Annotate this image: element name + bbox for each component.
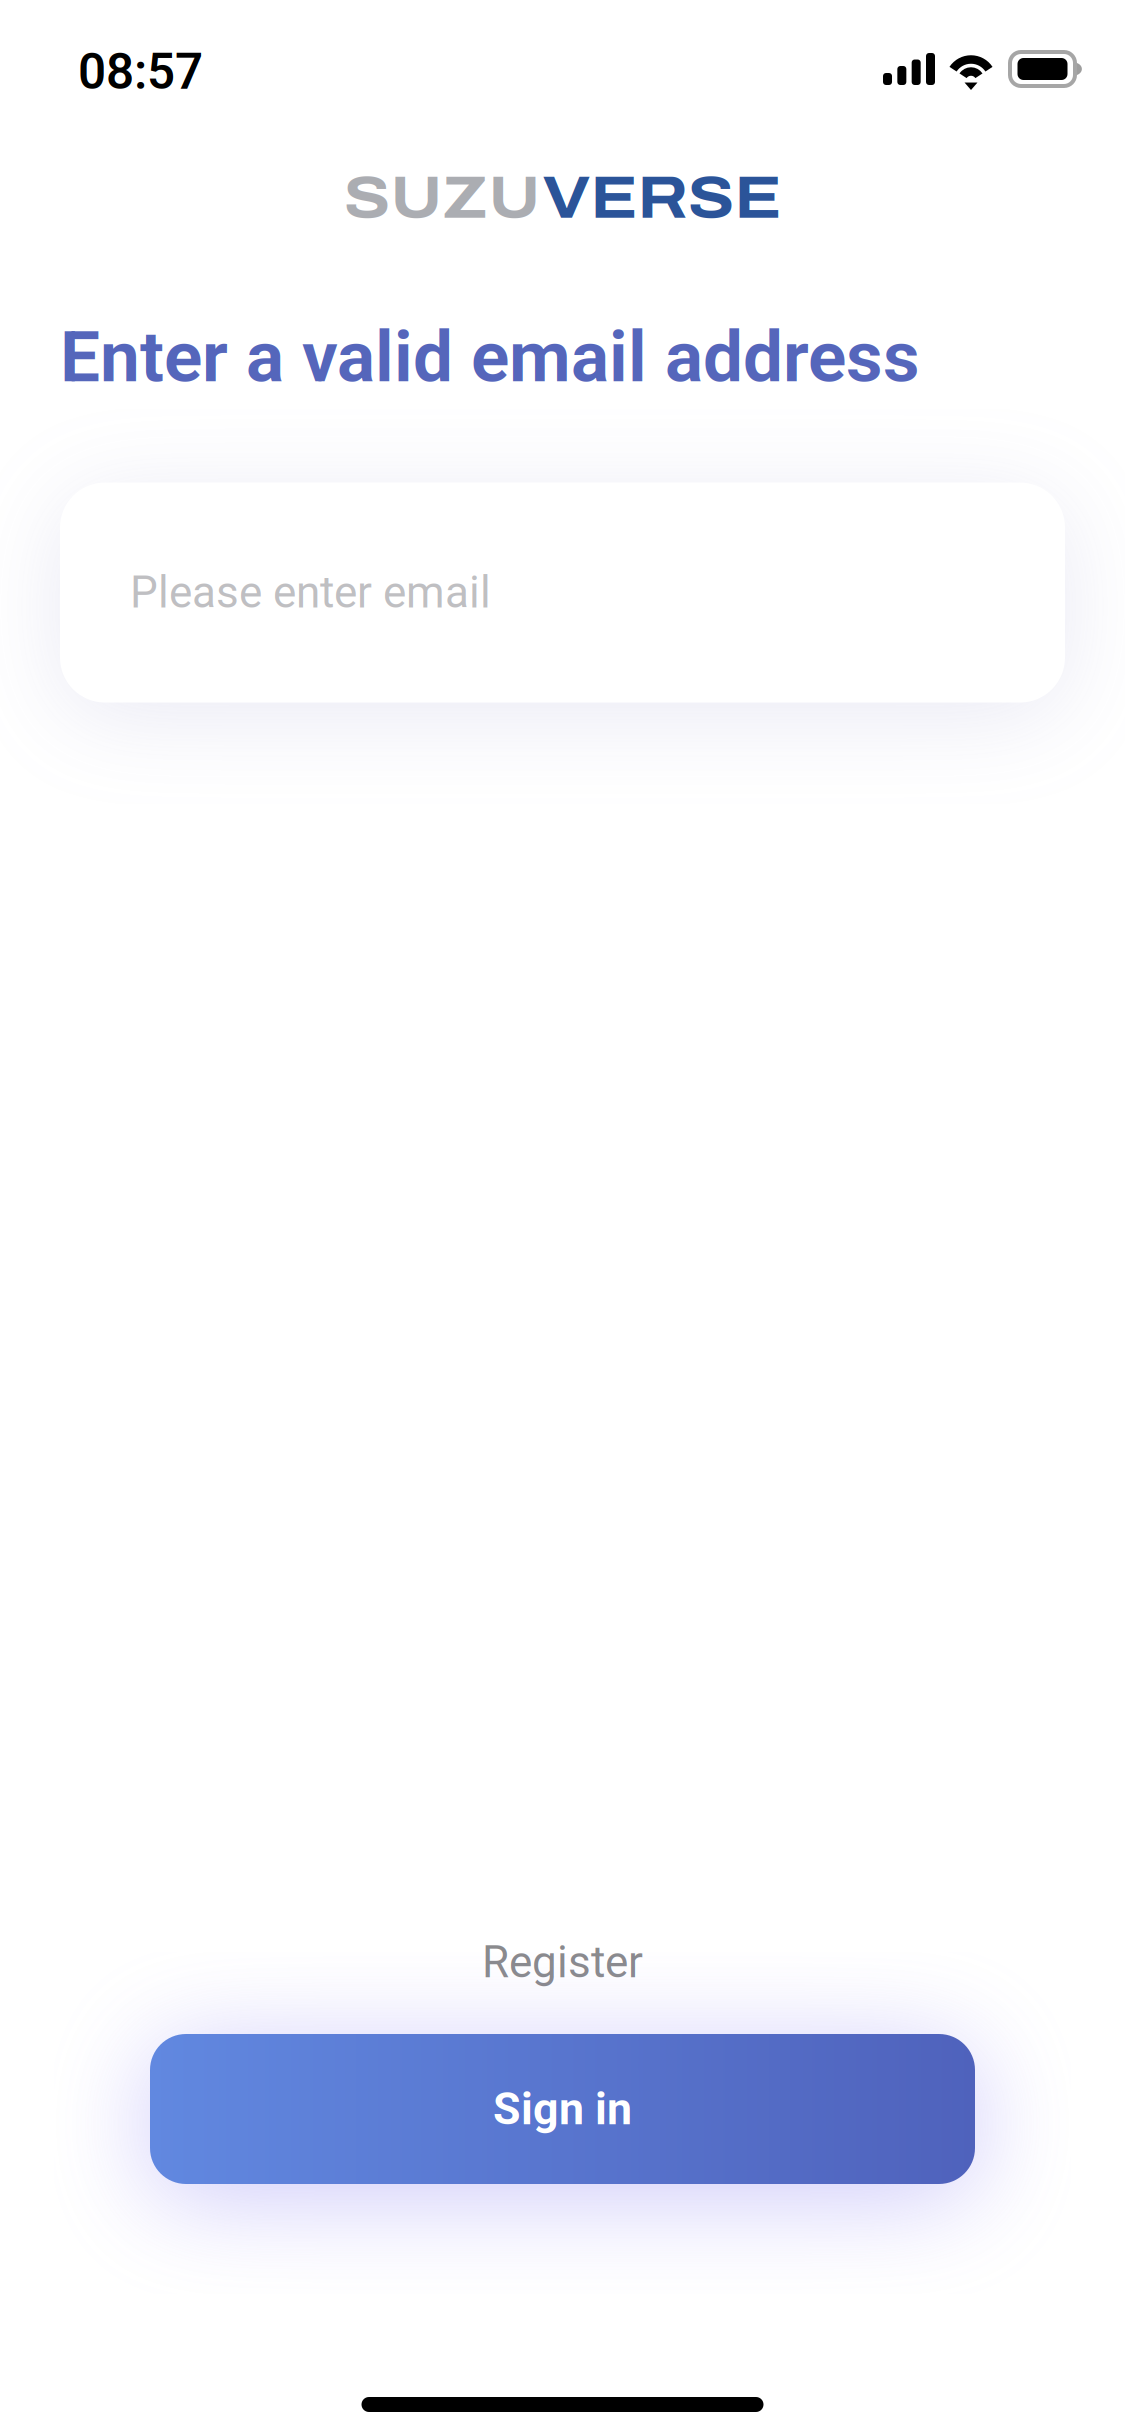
staticText: Register <box>482 1936 643 1988</box>
staticText: SUZU <box>343 165 540 230</box>
staticText: Enter a valid email address <box>60 315 920 399</box>
staticText: Sign in <box>493 2083 632 2135</box>
staticText: VERSE <box>542 165 781 230</box>
button[interactable]: Register <box>432 1916 693 2016</box>
staticText: Please enter email <box>130 567 491 618</box>
button[interactable]: Sign in <box>150 2034 975 2184</box>
staticText: 08:57 <box>78 43 203 101</box>
button[interactable]: Please enter email <box>60 483 1065 703</box>
